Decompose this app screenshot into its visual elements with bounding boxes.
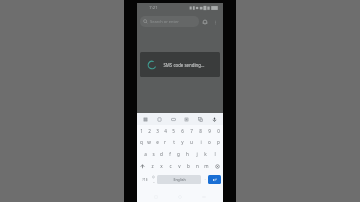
staticText: t xyxy=(173,139,175,145)
button[interactable]: m xyxy=(202,160,211,172)
button[interactable]: v xyxy=(175,160,184,172)
staticText: i xyxy=(200,139,202,145)
staticText: j xyxy=(196,151,198,157)
staticText: z xyxy=(151,163,154,169)
button[interactable]: GIF xyxy=(168,114,179,125)
button[interactable]: English xyxy=(157,175,201,184)
button[interactable]: Notifications xyxy=(199,16,210,27)
button[interactable]: SMS code sending... xyxy=(140,52,220,77)
button[interactable]: Search or enter xyxy=(140,16,199,27)
button[interactable]: 4 xyxy=(161,125,169,136)
staticText: , xyxy=(153,178,155,184)
button[interactable]: Stickers xyxy=(181,114,192,125)
button[interactable]: s xyxy=(149,148,157,160)
button[interactable]: y xyxy=(178,136,187,148)
button[interactable]: Emoji grid xyxy=(140,114,151,125)
button[interactable]: Translate xyxy=(195,114,206,125)
button[interactable]: e xyxy=(153,136,161,148)
button[interactable]: o xyxy=(205,136,214,148)
button[interactable]: b xyxy=(184,160,193,172)
staticText: 4 xyxy=(164,128,167,134)
button[interactable]: ?1$ xyxy=(139,172,150,186)
button[interactable]: r xyxy=(161,136,169,148)
button[interactable]: 1 xyxy=(137,125,145,136)
button[interactable]: h xyxy=(183,148,192,160)
staticText: y xyxy=(181,139,184,145)
staticText: l xyxy=(214,151,216,157)
button[interactable]: 3 xyxy=(153,125,161,136)
button[interactable]: Shift xyxy=(137,160,148,172)
staticText: b xyxy=(187,163,190,169)
staticText: English xyxy=(173,177,186,182)
staticText: 9 xyxy=(208,128,211,134)
staticText: ☺ xyxy=(152,175,155,178)
staticText: w xyxy=(147,139,151,145)
button[interactable]: d xyxy=(157,148,165,160)
staticText: 2 xyxy=(148,128,151,134)
staticText: u xyxy=(190,139,193,145)
staticText: 8 xyxy=(199,128,202,134)
button[interactable]: n xyxy=(193,160,202,172)
staticText: Search or enter xyxy=(150,19,179,24)
staticText: p xyxy=(217,139,220,145)
staticText: x xyxy=(160,163,163,169)
staticText: f xyxy=(169,151,171,157)
staticText: 7 xyxy=(190,128,193,134)
staticText: a xyxy=(144,151,147,157)
button[interactable]: p xyxy=(214,136,223,148)
staticText: 5 xyxy=(172,128,175,134)
button[interactable]: l xyxy=(210,148,219,160)
button[interactable]: t xyxy=(169,136,178,148)
staticText: h xyxy=(186,151,189,157)
button[interactable]: z xyxy=(148,160,157,172)
staticText: n xyxy=(196,163,199,169)
button[interactable]: f xyxy=(165,148,174,160)
button[interactable]: 2 xyxy=(145,125,153,136)
staticText: e xyxy=(156,139,159,145)
staticText: 0 xyxy=(217,128,220,134)
button[interactable]: 7 xyxy=(187,125,196,136)
staticText: k xyxy=(204,151,207,157)
button[interactable]: x xyxy=(157,160,166,172)
staticText: . xyxy=(204,176,206,182)
button[interactable]: Voice input xyxy=(209,114,220,125)
staticText: g xyxy=(177,151,180,157)
button[interactable]: 6 xyxy=(178,125,187,136)
button[interactable]: Themes xyxy=(154,114,165,125)
button[interactable]: 5 xyxy=(169,125,178,136)
button[interactable]: w xyxy=(145,136,153,148)
button[interactable]: u xyxy=(187,136,196,148)
button[interactable]: j xyxy=(192,148,201,160)
staticText: 3 xyxy=(156,128,159,134)
staticText: m xyxy=(204,163,209,169)
staticText: q xyxy=(140,139,143,145)
staticText: ?1$ xyxy=(142,177,148,182)
button[interactable]: a xyxy=(141,148,149,160)
button[interactable]: i xyxy=(196,136,205,148)
staticText: 7:21 xyxy=(149,5,158,11)
button[interactable]: 8 xyxy=(196,125,205,136)
button[interactable]: q xyxy=(137,136,145,148)
staticText: SMS code sending... xyxy=(163,62,205,68)
staticText: o xyxy=(208,139,211,145)
button[interactable]: c xyxy=(166,160,175,172)
button[interactable]: Backspace xyxy=(211,160,223,172)
staticText: 1 xyxy=(140,128,143,134)
button[interactable]: 9 xyxy=(205,125,214,136)
button[interactable]: 0 xyxy=(214,125,223,136)
staticText: c xyxy=(169,163,172,169)
button[interactable]: g xyxy=(174,148,183,160)
button[interactable]: Enter xyxy=(208,175,221,184)
button[interactable]: More options xyxy=(210,17,220,27)
staticText: 6 xyxy=(181,128,184,134)
staticText: r xyxy=(164,139,166,145)
staticText: s xyxy=(152,151,155,157)
button[interactable]: k xyxy=(201,148,210,160)
button[interactable]: Comma xyxy=(150,172,157,186)
staticText: v xyxy=(178,163,181,169)
staticText: d xyxy=(160,151,163,157)
